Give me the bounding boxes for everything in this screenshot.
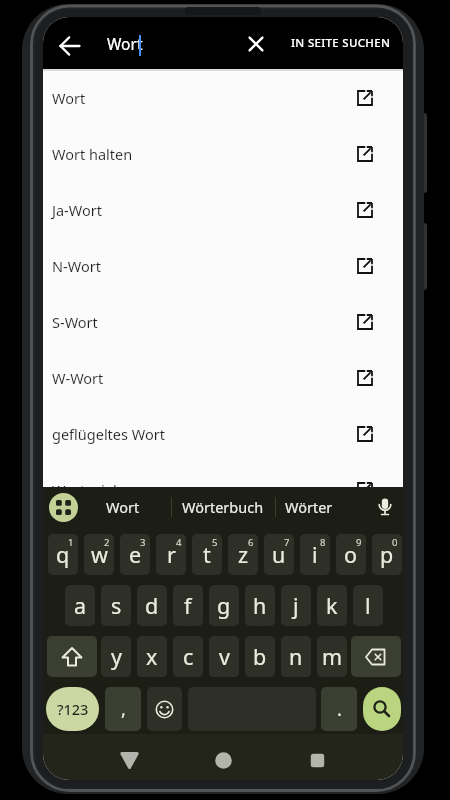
button[interactable] [351,636,401,677]
staticText: 7 [284,536,290,549]
staticText: Wort halten [52,144,133,164]
staticText: Wort [52,88,86,108]
staticText: g [217,591,231,620]
button[interactable] [109,742,149,778]
staticText: . [337,697,342,722]
staticText: i [312,540,318,569]
button[interactable]: ?123 [46,687,99,731]
staticText: k [326,591,338,620]
button[interactable]: o [336,534,366,575]
button[interactable] [49,493,78,522]
button[interactable] [297,742,337,778]
button[interactable] [147,687,182,731]
button[interactable]: l [353,585,383,626]
staticText: y [111,642,122,671]
staticText: 5 [212,536,218,549]
staticText: c [183,642,194,671]
button[interactable] [47,636,97,677]
button[interactable]: S-Wort [43,294,403,350]
staticText: n [289,642,303,671]
staticText: Wörter [285,497,333,517]
button[interactable]: Wort halten [43,126,403,182]
button[interactable]: j [281,585,311,626]
staticText: m [322,642,343,671]
button[interactable]: y [101,636,131,677]
button[interactable] [371,493,399,521]
button[interactable]: h [245,585,275,626]
button[interactable] [363,687,401,731]
button[interactable]: w [84,534,114,575]
button[interactable]: Ja-Wort [43,182,403,238]
staticText: Wörterbuch [182,497,264,517]
staticText: W-Wort [52,368,104,388]
button[interactable]: Wort [93,490,153,524]
staticText: x [146,642,158,671]
button[interactable]: . [321,687,357,731]
staticText: q [56,540,70,569]
staticText: 9 [356,536,362,549]
button[interactable]: u [264,534,294,575]
staticText: N-Wort [52,256,101,276]
button[interactable]: g [209,585,239,626]
staticText: r [167,540,176,569]
button[interactable]: q [48,534,78,575]
button[interactable]: a [65,585,95,626]
staticText: v [219,642,230,671]
staticText: b [253,642,267,671]
staticText: p [380,540,394,569]
button[interactable]: n [281,636,311,677]
button[interactable]: t [192,534,222,575]
button[interactable]: f [173,585,203,626]
button[interactable]: s [101,585,131,626]
staticText: h [253,591,267,620]
button[interactable]: b [245,636,275,677]
button[interactable] [203,742,243,778]
button[interactable]: IN SEITE SUCHEN [283,17,391,69]
staticText: o [344,540,358,569]
staticText: j [293,591,299,620]
staticText: Wortspiel [52,480,117,500]
button[interactable] [237,25,274,62]
staticText: , [121,697,126,722]
staticText: e [129,540,142,569]
staticText: ?123 [57,699,89,719]
button[interactable]: d [137,585,167,626]
staticText: 1 [68,536,74,549]
button[interactable]: i [300,534,330,575]
staticText: 4 [176,536,182,549]
button[interactable]: r [156,534,186,575]
button[interactable]: k [317,585,347,626]
button[interactable]: e [120,534,150,575]
staticText: Ja-Wort [52,200,102,220]
staticText: f [184,591,192,620]
button[interactable]: geflügeltes Wort [43,406,403,462]
button[interactable]: Wort [43,70,403,126]
button[interactable]: Wortspiel [43,462,403,518]
staticText: 8 [320,536,326,549]
staticText: 6 [248,536,254,549]
button[interactable]: p [372,534,402,575]
button[interactable]: Wörter [283,490,335,524]
staticText: l [365,591,371,620]
staticText: S-Wort [52,312,98,332]
button[interactable] [51,27,89,65]
button[interactable]: v [209,636,239,677]
staticText: IN SEITE SUCHEN [291,35,391,51]
staticText: w [91,540,108,569]
button[interactable]: c [173,636,203,677]
staticText: Wort [107,33,143,54]
button[interactable]: Wörterbuch [178,490,268,524]
button[interactable]: m [317,636,347,677]
staticText: z [238,540,249,569]
button[interactable]: N-Wort [43,238,403,294]
staticText: a [74,591,87,620]
staticText: 0 [392,536,398,549]
staticText: 2 [104,536,110,549]
button[interactable]: W-Wort [43,350,403,406]
button[interactable]: , [105,687,141,731]
button[interactable]: x [137,636,167,677]
staticText: s [111,591,122,620]
button[interactable]: z [228,534,258,575]
staticText: 3 [140,536,146,549]
